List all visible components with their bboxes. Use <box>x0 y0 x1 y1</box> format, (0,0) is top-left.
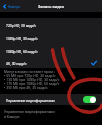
staticText: Камера <box>8 4 21 8</box>
staticText: Запись видео <box>38 4 65 9</box>
staticText: Управление видеоформатами <box>6 98 55 102</box>
button[interactable]: 1080p HD, 60 кадр/с <box>0 44 102 57</box>
button[interactable]: 1080p HD, 30 кадр/с <box>0 31 102 44</box>
button[interactable]: Управление видеоформатами <box>83 96 96 103</box>
staticText: 4K, 30 кадр/с <box>6 61 27 65</box>
staticText: 720p HD, 30 кадр/с <box>6 23 37 27</box>
staticText: 1080p HD, 30 кадр/с <box>6 36 38 40</box>
button[interactable]: Камера <box>2 0 21 12</box>
staticText: Управление видеоформатами в Камере. <box>4 109 55 119</box>
staticText: Минута видео составит прим.: • 65 МБ при… <box>4 69 60 90</box>
button[interactable]: 720p HD, 30 кадр/с <box>0 18 102 31</box>
staticText: 1080p HD, 60 кадр/с <box>6 49 38 53</box>
button[interactable]: Управление видеоформатами <box>0 94 102 105</box>
button[interactable]: 4K, 30 кадр/с <box>0 57 102 68</box>
